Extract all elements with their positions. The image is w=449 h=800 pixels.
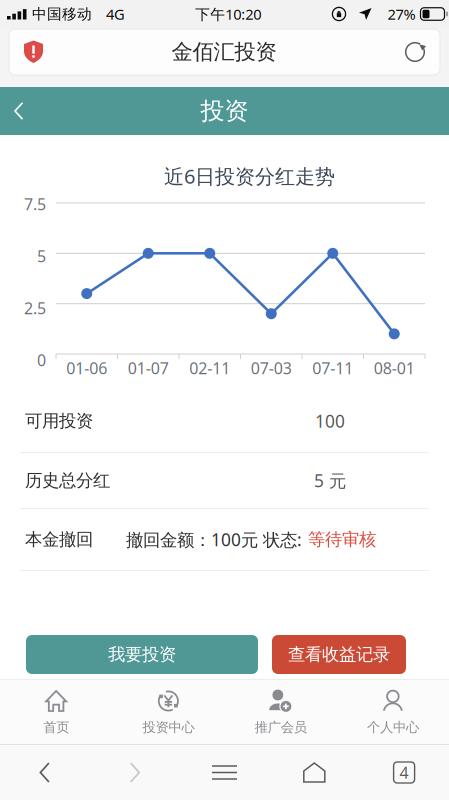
staticText: 5 元 <box>314 469 346 492</box>
staticText: 本金撤回 <box>25 529 93 550</box>
staticText: 4 <box>400 762 409 783</box>
button[interactable]: Site security <box>9 29 58 75</box>
staticText: 0 <box>37 349 46 371</box>
staticText: 01-07 <box>128 357 169 379</box>
staticText: 个人中心 <box>367 719 419 735</box>
button[interactable]: 投资中心 <box>112 680 224 744</box>
staticText: 可用投资 <box>25 410 93 432</box>
button[interactable]: 首页 <box>0 680 112 744</box>
staticText: 2.5 <box>24 297 46 319</box>
staticText: 07-11 <box>312 357 353 379</box>
staticText: 中国移动 <box>32 5 92 23</box>
staticText: 08-01 <box>374 357 415 379</box>
staticText: 02-11 <box>189 357 230 379</box>
button[interactable]: Bookmarks <box>180 745 269 799</box>
staticText: 金佰汇投资 <box>171 39 276 65</box>
staticText: 投资中心 <box>142 719 194 735</box>
button[interactable]: Back <box>0 745 90 799</box>
staticText: 推广会员 <box>255 719 307 735</box>
staticText: 27% <box>387 4 415 24</box>
staticText: 下午10:20 <box>195 4 261 24</box>
staticText: 4G <box>106 4 125 24</box>
button[interactable]: Tabs <box>359 745 449 799</box>
staticText: 查看收益记录 <box>288 644 390 665</box>
button[interactable]: 我要投资 <box>26 635 258 674</box>
button[interactable]: 查看收益记录 <box>272 635 406 674</box>
staticText: 等待审核 <box>308 529 376 550</box>
button[interactable]: 个人中心 <box>337 680 449 744</box>
staticText: 我要投资 <box>108 644 176 665</box>
staticText: 近6日投资分红走势 <box>164 163 335 189</box>
staticText: 撤回金额：100元 状态: <box>126 528 302 551</box>
staticText: 100 <box>315 409 345 432</box>
button[interactable]: Back <box>0 87 40 135</box>
staticText: 投资 <box>200 96 248 126</box>
button[interactable]: Home <box>269 745 359 799</box>
staticText: 01-06 <box>66 357 107 379</box>
staticText: 7.5 <box>24 193 46 215</box>
button[interactable]: 推广会员 <box>224 680 337 744</box>
staticText: 首页 <box>43 719 69 735</box>
button[interactable]: Forward <box>90 745 180 799</box>
staticText: 5 <box>37 245 46 267</box>
staticText: 历史总分红 <box>25 470 110 491</box>
button[interactable]: Reload <box>390 29 440 75</box>
staticText: 07-03 <box>251 357 292 379</box>
